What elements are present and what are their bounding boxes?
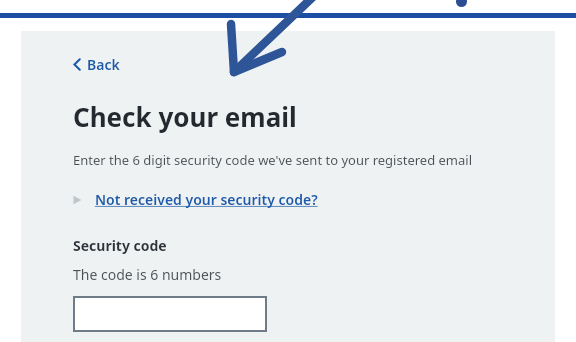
- staticText: Back: [87, 55, 120, 74]
- staticText: Enter the 6 digit security code we've se…: [73, 151, 473, 169]
- staticText: Security code: [73, 236, 167, 255]
- button[interactable]: Back: [73, 55, 120, 74]
- button[interactable]: Not received your security code?: [73, 190, 318, 209]
- button[interactable]: Security code input: [73, 296, 267, 332]
- staticText: The code is 6 numbers: [73, 265, 222, 284]
- staticText: Check your email: [73, 99, 297, 134]
- staticText: Not received your security code?: [95, 190, 318, 209]
